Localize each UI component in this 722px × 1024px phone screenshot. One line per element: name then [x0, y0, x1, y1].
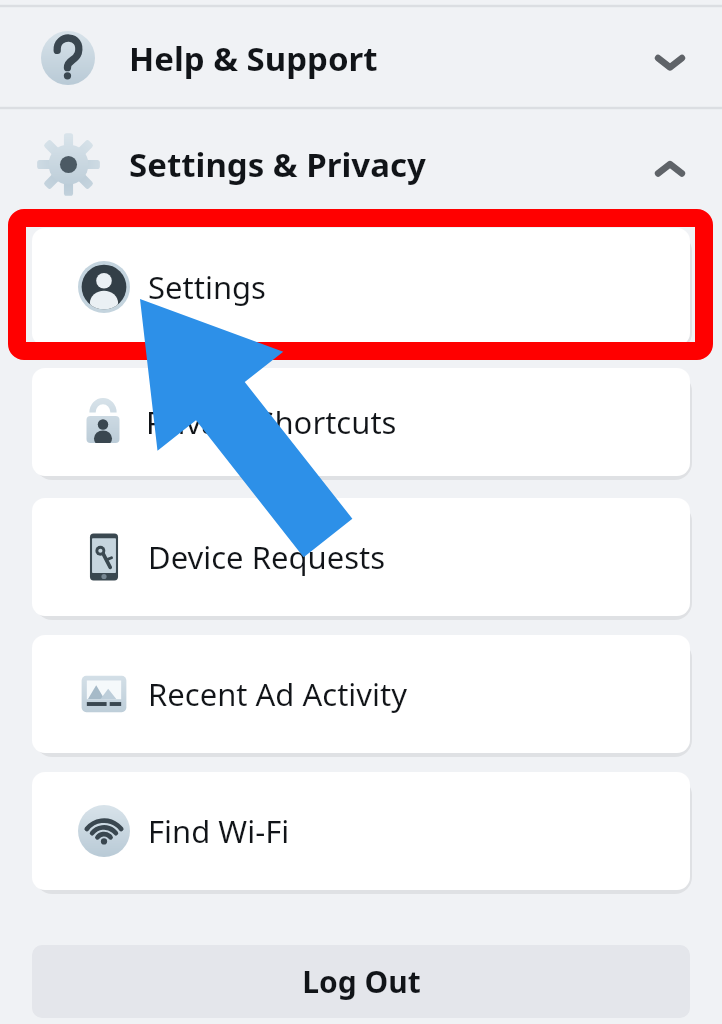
staticText: Log Out [302, 961, 421, 1002]
button[interactable]: Expand Help and Support [648, 40, 692, 84]
button[interactable]: Settings [32, 228, 690, 346]
button[interactable]: Collapse Settings and Privacy [648, 147, 692, 191]
staticText: Settings & Privacy [129, 142, 426, 187]
staticText: Device Requests [148, 536, 386, 578]
staticText: Find Wi-Fi [148, 810, 290, 852]
button[interactable]: Recent Ad Activity [32, 635, 690, 753]
button[interactable]: Find Wi-Fi [32, 772, 690, 890]
button[interactable]: Help & Support [0, 6, 722, 108]
staticText: Settings [148, 266, 266, 308]
button[interactable]: Device Requests [32, 498, 690, 616]
staticText: Help & Support [129, 36, 378, 81]
button[interactable]: Privacy Shortcuts [32, 368, 690, 476]
button[interactable]: Settings & Privacy [0, 112, 722, 216]
staticText: Recent Ad Activity [148, 673, 408, 715]
button[interactable]: Log Out [32, 945, 690, 1018]
staticText: Privacy Shortcuts [146, 401, 397, 443]
